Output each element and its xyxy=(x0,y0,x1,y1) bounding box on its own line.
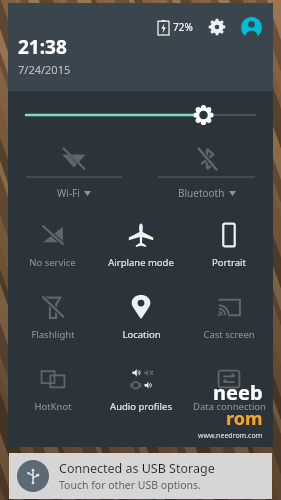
staticText: Touch for other USB options. xyxy=(59,478,201,492)
button[interactable]: HotKnot xyxy=(8,355,97,427)
staticText: Data connection xyxy=(193,400,266,413)
staticText: Wi-Fi xyxy=(57,186,80,200)
button[interactable]: Portrait xyxy=(185,211,273,283)
staticText: Portrait xyxy=(212,256,246,269)
button[interactable]: No service xyxy=(8,211,97,283)
staticText: HotKnot xyxy=(34,400,72,413)
button[interactable]: Cast screen xyxy=(185,283,273,355)
staticText: Location xyxy=(122,328,161,341)
staticText: 7/24/2015 xyxy=(18,62,71,77)
button[interactable]: Wi-Fi xyxy=(8,139,140,207)
button[interactable]: Connected as USB Storage xyxy=(9,453,272,499)
button[interactable]: Airplane mode xyxy=(97,211,185,283)
staticText: Bluetooth xyxy=(178,186,225,200)
button[interactable]: Settings xyxy=(205,15,229,39)
button[interactable]: Bluetooth xyxy=(140,139,273,207)
staticText: neeb xyxy=(213,379,263,406)
staticText: Flashlight xyxy=(31,328,75,341)
staticText: Airplane mode xyxy=(108,256,174,269)
staticText: 21:38 xyxy=(18,34,67,60)
button[interactable]: Flashlight xyxy=(8,283,97,355)
staticText: No service xyxy=(29,256,76,269)
staticText: Audio profiles xyxy=(110,400,172,413)
staticText: rom xyxy=(226,406,263,431)
button[interactable]: Data connection xyxy=(185,355,273,427)
staticText: www.needrom.com xyxy=(198,431,263,441)
staticText: Connected as USB Storage xyxy=(59,460,215,477)
staticText: Cast screen xyxy=(203,328,255,341)
staticText: 72% xyxy=(173,20,193,34)
button[interactable]: Location xyxy=(97,283,185,355)
button[interactable]: Audio profiles xyxy=(97,355,185,427)
button[interactable]: User profile xyxy=(239,15,263,39)
button[interactable]: Brightness xyxy=(8,91,273,139)
